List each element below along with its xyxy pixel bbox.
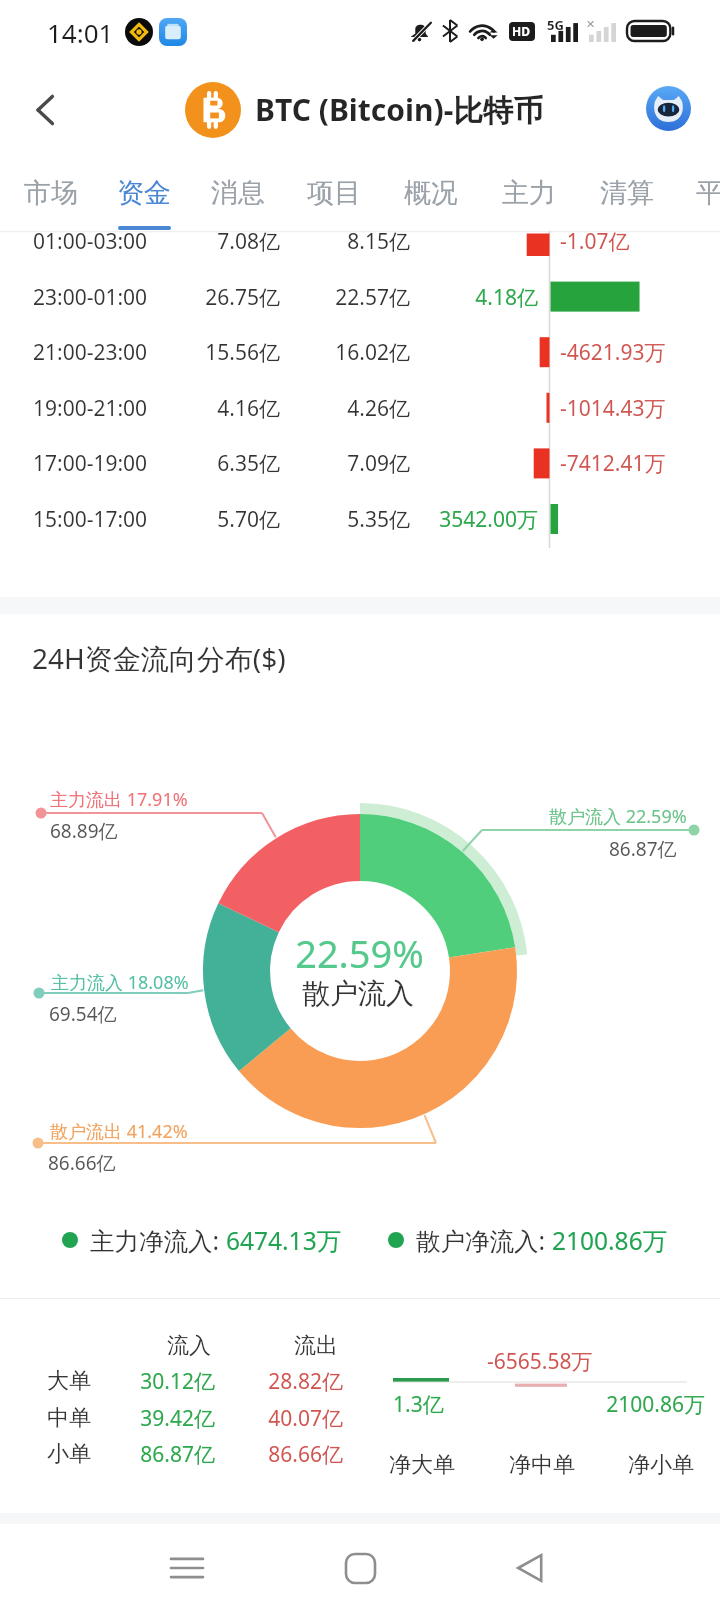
staticText: 7.08亿 [217, 227, 280, 256]
staticText: 16.02亿 [335, 338, 410, 367]
staticText: 01:00-03:00 [33, 227, 148, 256]
staticText: 3542.00万 [439, 505, 538, 534]
staticText: 2100.86万 [552, 1224, 668, 1255]
button[interactable]: 市场 [3, 152, 98, 231]
button[interactable] [0, 436, 720, 492]
staticText: 主力流出 17.91% [50, 787, 188, 812]
staticText: 5.70亿 [217, 505, 280, 534]
staticText: 散户流入 22.59% [549, 804, 687, 829]
staticText: 散户流入 [302, 976, 414, 1011]
staticText: 6.35亿 [217, 449, 280, 478]
staticText: 主力 [502, 176, 556, 210]
button[interactable] [0, 213, 720, 269]
staticText: 19:00-21:00 [33, 394, 148, 423]
staticText: 净中单 [509, 1451, 575, 1479]
staticText: 28.82亿 [268, 1367, 343, 1396]
staticText: 21:00-23:00 [33, 338, 148, 367]
staticText: 4.26亿 [347, 394, 410, 423]
staticText: 17:00-19:00 [33, 449, 148, 478]
button[interactable]: 资金 [96, 152, 191, 231]
staticText: -4621.93万 [560, 338, 666, 367]
staticText: 39.42亿 [140, 1404, 215, 1433]
staticText: 14:01 [47, 15, 114, 50]
staticText: 平 [696, 176, 720, 210]
staticText: -6565.58万 [487, 1347, 593, 1376]
staticText: 5.35亿 [347, 505, 410, 534]
staticText: 主力流入 18.08% [51, 970, 189, 995]
button[interactable] [0, 491, 720, 547]
button[interactable]: 散户净流入: [388, 1224, 668, 1255]
staticText: 资金 [117, 176, 171, 210]
button[interactable]: 消息 [190, 152, 285, 231]
staticText: 5G [547, 16, 564, 34]
button[interactable]: AI assistant [646, 86, 691, 131]
button[interactable]: 项目 [286, 152, 381, 231]
staticText: 概况 [404, 176, 458, 210]
button[interactable] [0, 380, 720, 436]
staticText: 8.15亿 [347, 227, 410, 256]
button[interactable]: 清算 [579, 152, 674, 231]
staticText: 30.12亿 [140, 1367, 215, 1396]
staticText: 6474.13万 [226, 1224, 342, 1255]
staticText: 4.18亿 [475, 283, 538, 312]
button[interactable]: 主力 [481, 152, 576, 231]
staticText: 15:00-17:00 [33, 505, 148, 534]
staticText: 86.66亿 [268, 1440, 343, 1469]
staticText: 86.87亿 [140, 1440, 215, 1469]
staticText: 24H资金流向分布($) [32, 639, 286, 677]
staticText: 净大单 [389, 1451, 455, 1479]
staticText: 40.07亿 [268, 1404, 343, 1433]
staticText: 15.56亿 [205, 338, 280, 367]
staticText: 净小单 [628, 1451, 694, 1479]
button[interactable]: Back [498, 1536, 562, 1600]
staticText: 22.57亿 [335, 283, 410, 312]
button[interactable]: Back [8, 72, 84, 148]
button[interactable]: 主力净流入: [62, 1224, 342, 1255]
staticText: 86.66亿 [48, 1150, 116, 1176]
staticText: 中单 [47, 1404, 91, 1432]
staticText: ✕ [586, 18, 596, 31]
staticText: 69.54亿 [49, 1001, 117, 1027]
staticText: 项目 [307, 176, 361, 210]
staticText: -7412.41万 [560, 449, 666, 478]
staticText: 流入 [167, 1332, 211, 1360]
staticText: HD [512, 23, 530, 39]
button[interactable]: 平 [675, 152, 720, 231]
staticText: 小单 [47, 1440, 91, 1468]
staticText: 86.87亿 [609, 836, 677, 862]
staticText: 清算 [600, 176, 654, 210]
staticText: 7.09亿 [347, 449, 410, 478]
staticText: 68.89亿 [50, 818, 118, 844]
staticText: 主力净流入: [90, 1224, 226, 1255]
staticText: 消息 [211, 176, 265, 210]
button[interactable]: Home [328, 1536, 392, 1600]
staticText: 2100.86万 [606, 1390, 705, 1419]
button[interactable]: Recent apps [155, 1536, 219, 1600]
staticText: BTC (Bitcoin)-比特币 [255, 89, 544, 130]
staticText: -1.07亿 [560, 227, 630, 256]
staticText: 22.59% [295, 927, 424, 979]
staticText: 26.75亿 [205, 283, 280, 312]
button[interactable] [0, 324, 720, 380]
staticText: 大单 [47, 1367, 91, 1395]
button[interactable] [0, 269, 720, 325]
staticText: 23:00-01:00 [33, 283, 148, 312]
staticText: -1014.43万 [560, 394, 666, 423]
staticText: 散户净流入: [416, 1224, 552, 1255]
staticText: 市场 [24, 176, 78, 210]
staticText: 4.16亿 [217, 394, 280, 423]
staticText: 1.3亿 [393, 1390, 444, 1419]
button[interactable]: 概况 [383, 152, 478, 231]
staticText: 流出 [294, 1332, 338, 1360]
staticText: 散户流出 41.42% [50, 1119, 188, 1144]
